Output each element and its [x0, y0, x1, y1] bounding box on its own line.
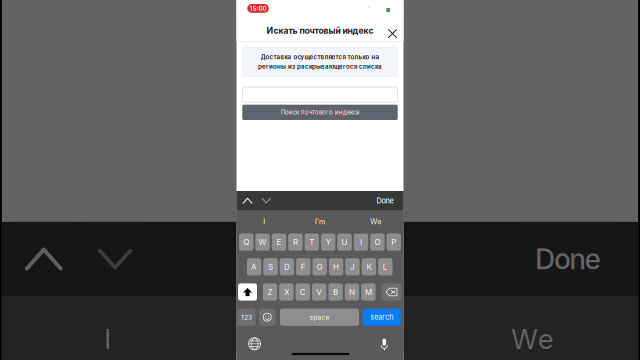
staticText: K: [366, 262, 371, 272]
button[interactable]: Switch keyboard: [245, 335, 264, 352]
button[interactable]: U: [337, 233, 352, 251]
button[interactable]: search: [363, 309, 401, 326]
staticText: 15:00: [250, 4, 267, 12]
button[interactable]: M: [361, 283, 376, 301]
button[interactable]: G: [312, 258, 327, 275]
button[interactable]: D: [280, 258, 294, 275]
staticText: U: [342, 237, 348, 247]
button[interactable]: Delete: [381, 283, 402, 301]
staticText: S: [268, 262, 273, 272]
button[interactable]: Emoji: [259, 309, 275, 326]
button[interactable]: Previous field: [239, 191, 255, 210]
button[interactable]: L: [378, 258, 392, 275]
button[interactable]: P: [387, 233, 401, 251]
staticText: I: [263, 217, 265, 226]
button[interactable]: We: [348, 210, 403, 233]
button[interactable]: We: [348, 210, 403, 233]
button[interactable]: Switch keyboard: [245, 335, 264, 352]
button[interactable]: V: [312, 283, 326, 301]
button[interactable]: A: [247, 258, 261, 275]
staticText: M: [365, 287, 372, 297]
button[interactable]: L: [378, 258, 392, 275]
button[interactable]: A: [247, 258, 261, 275]
button[interactable]: S: [263, 258, 278, 275]
button[interactable]: H: [329, 258, 343, 275]
button[interactable]: T: [305, 233, 319, 251]
staticText: Z: [267, 287, 272, 297]
button[interactable]: X: [279, 283, 294, 301]
button[interactable]: Z: [263, 283, 277, 301]
button[interactable]: N: [345, 283, 359, 301]
button[interactable]: Q: [239, 233, 253, 251]
button[interactable]: Delete: [381, 283, 402, 301]
button[interactable]: U: [337, 233, 352, 251]
button[interactable]: J: [345, 258, 360, 275]
staticText: P: [391, 237, 396, 247]
button[interactable]: R: [288, 233, 303, 251]
button[interactable]: F: [296, 258, 310, 275]
button[interactable]: Z: [263, 283, 277, 301]
button[interactable]: I'm: [292, 210, 348, 233]
button[interactable]: E: [272, 233, 286, 251]
button[interactable]: Y: [321, 233, 335, 251]
staticText: J: [350, 262, 355, 272]
button[interactable]: W: [255, 233, 270, 251]
staticText: Q: [243, 237, 249, 247]
button[interactable]: I'm: [292, 210, 348, 233]
button[interactable]: T: [305, 233, 319, 251]
button[interactable]: Close: [385, 27, 399, 41]
button[interactable]: B: [328, 283, 343, 301]
button[interactable]: K: [362, 258, 376, 275]
button[interactable]: F: [296, 258, 310, 275]
button[interactable]: X: [279, 283, 294, 301]
button[interactable]: S: [263, 258, 278, 275]
button[interactable]: Q: [239, 233, 253, 251]
staticText: B: [333, 287, 338, 297]
button[interactable]: space: [280, 309, 359, 326]
button[interactable]: I: [236, 210, 292, 233]
button[interactable]: C: [296, 283, 310, 301]
button[interactable]: Numbers: [237, 309, 256, 326]
staticText: T: [309, 237, 314, 247]
button[interactable]: Numbers: [237, 309, 256, 326]
button[interactable]: Done: [372, 191, 398, 210]
button[interactable]: G: [312, 258, 327, 275]
button[interactable]: Done: [372, 191, 398, 210]
button[interactable]: O: [370, 233, 385, 251]
button[interactable]: H: [329, 258, 343, 275]
button[interactable]: Next field: [258, 191, 274, 210]
button[interactable]: D: [280, 258, 294, 275]
button[interactable]: Dictation: [377, 335, 392, 352]
staticText: R: [293, 237, 298, 247]
button[interactable]: Поиск почтового индекса: [242, 105, 398, 120]
button[interactable]: Emoji: [259, 309, 275, 326]
button[interactable]: B: [328, 283, 343, 301]
button[interactable]: V: [312, 283, 326, 301]
button[interactable]: P: [387, 233, 401, 251]
button[interactable]: E: [272, 233, 286, 251]
button[interactable]: Previous field: [239, 191, 255, 210]
button[interactable]: N: [345, 283, 359, 301]
button[interactable]: Поиск почтового индекса: [242, 105, 398, 120]
button[interactable]: K: [362, 258, 376, 275]
button[interactable]: Shift: [238, 283, 257, 301]
button[interactable]: C: [296, 283, 310, 301]
staticText: A: [251, 262, 257, 272]
button[interactable]: W: [255, 233, 270, 251]
button[interactable]: I: [354, 233, 368, 251]
button[interactable]: Dictation: [377, 335, 392, 352]
button[interactable]: M: [361, 283, 376, 301]
button[interactable]: Close: [385, 27, 399, 41]
button[interactable]: space: [280, 309, 359, 326]
button[interactable]: J: [345, 258, 360, 275]
staticText: G: [317, 262, 323, 272]
button[interactable]: search: [363, 309, 401, 326]
staticText: Доставка осуществляется только на: [260, 53, 379, 61]
button[interactable]: O: [370, 233, 385, 251]
button[interactable]: I: [236, 210, 292, 233]
button[interactable]: I: [354, 233, 368, 251]
button[interactable]: Next field: [258, 191, 274, 210]
button[interactable]: Shift: [238, 283, 257, 301]
button[interactable]: R: [288, 233, 303, 251]
button[interactable]: Y: [321, 233, 335, 251]
